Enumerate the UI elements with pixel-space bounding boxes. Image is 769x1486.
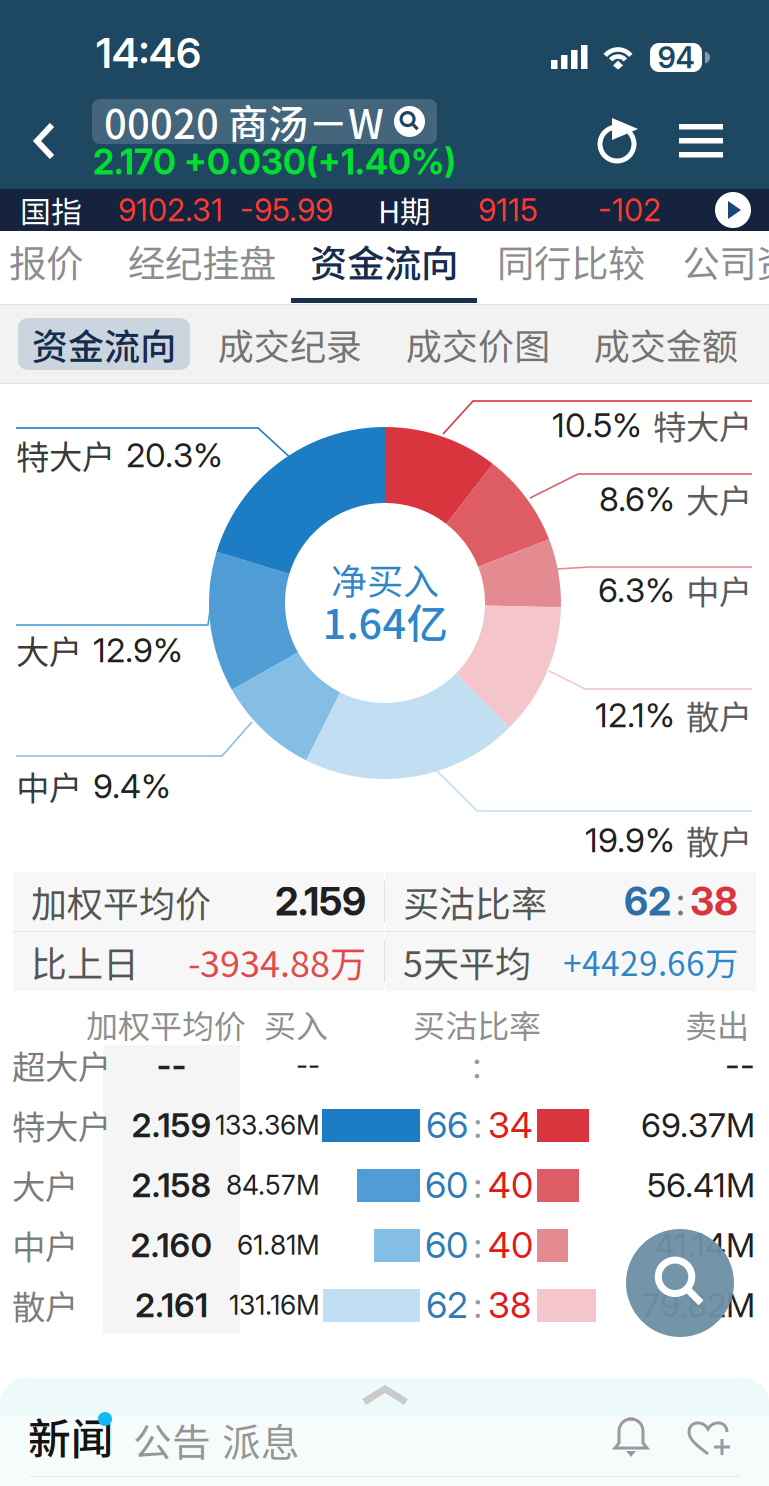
staticText: 60	[425, 1163, 468, 1207]
staticText: 净买入	[331, 553, 439, 605]
staticText: --	[156, 1045, 186, 1085]
staticText: 40	[488, 1223, 533, 1267]
staticText: 66	[426, 1103, 468, 1147]
staticText: 公告	[133, 1412, 211, 1468]
button[interactable]: 公司资	[663, 231, 769, 304]
staticText: --	[725, 1045, 755, 1085]
button[interactable]: Alerts	[600, 1406, 662, 1468]
staticText: 成交价图	[406, 318, 550, 370]
staticText: 2.161	[135, 1285, 208, 1325]
staticText: -3934.88万	[188, 935, 366, 987]
staticText: 买沽比率	[403, 875, 547, 927]
staticText: 中户	[12, 1221, 78, 1269]
staticText: 国指	[20, 188, 82, 232]
staticText: 84.57M	[226, 1169, 320, 1201]
staticText: 特大户	[16, 431, 115, 479]
staticText: 14:46	[96, 28, 201, 78]
staticText: :	[473, 1163, 482, 1207]
staticText: H期	[378, 188, 431, 232]
staticText: 40	[488, 1163, 533, 1207]
staticText: 2.158	[131, 1165, 211, 1205]
button[interactable]: 成交价图	[392, 318, 564, 370]
staticText: 资金流向	[310, 234, 458, 288]
staticText: 散户	[686, 691, 752, 739]
staticText: 2.159	[275, 878, 366, 925]
staticText: 61.81M	[237, 1229, 320, 1261]
staticText: 9.4%	[93, 766, 171, 806]
staticText: 94	[657, 40, 694, 75]
staticText: 卖出	[685, 1001, 749, 1047]
button[interactable]: Back	[8, 106, 82, 176]
button[interactable]: Add to watchlist	[676, 1406, 744, 1468]
staticText: 12.9%	[93, 630, 183, 670]
staticText: 20.3%	[126, 435, 223, 475]
staticText: 34	[488, 1103, 533, 1147]
staticText: 00020 商汤－W	[104, 92, 384, 150]
button[interactable]: Menu	[659, 101, 743, 181]
staticText: 中户	[16, 762, 82, 810]
staticText: 56.41M	[647, 1165, 755, 1205]
button[interactable]: 公告	[133, 1412, 243, 1468]
staticText: 2.160	[130, 1225, 212, 1265]
button[interactable]: Refresh	[577, 101, 661, 181]
staticText: 9115	[478, 191, 538, 228]
staticText: 买沽比率	[413, 1001, 541, 1047]
button[interactable]: 报价	[0, 231, 101, 304]
staticText: :	[473, 1223, 482, 1267]
staticText: 散户	[12, 1281, 78, 1329]
staticText: 散户	[686, 816, 752, 864]
button[interactable]: 经纪挂盘	[117, 231, 287, 304]
staticText: 79.82M	[642, 1285, 755, 1325]
staticText: 大户	[686, 475, 752, 523]
staticText: :	[472, 1042, 481, 1088]
staticText: 公司资	[682, 234, 769, 288]
staticText: -95.99	[240, 191, 333, 228]
staticText: 成交金额	[594, 318, 738, 370]
staticText: 派息	[222, 1412, 300, 1468]
staticText: 1.64亿	[322, 591, 447, 651]
staticText: 69.37M	[641, 1105, 755, 1145]
button[interactable]: 成交金额	[580, 318, 752, 370]
staticText: 经纪挂盘	[128, 234, 276, 288]
button[interactable]: 同行比较	[486, 231, 656, 304]
staticText: :	[473, 1283, 482, 1327]
staticText: 38	[488, 1283, 531, 1327]
staticText: 特大户	[12, 1101, 111, 1149]
staticText: --	[296, 1049, 320, 1081]
button[interactable]: 新闻	[28, 1410, 158, 1466]
staticText: +4429.66万	[563, 937, 738, 986]
staticText: 买入	[264, 1001, 328, 1047]
staticText: 2.170 +0.030(+1.40%)	[93, 141, 456, 183]
staticText: 62	[426, 1283, 468, 1327]
staticText: 131.16M	[229, 1289, 320, 1321]
staticText: 38	[690, 878, 738, 925]
button[interactable]: 资金流向	[18, 318, 190, 370]
staticText: 大户	[16, 626, 82, 674]
staticText: :	[473, 1103, 482, 1147]
staticText: 12.1%	[595, 695, 675, 735]
staticText: 同行比较	[497, 234, 645, 288]
staticText: 特大户	[653, 401, 752, 449]
staticText: 2.159	[131, 1105, 211, 1145]
staticText: 19.9%	[585, 820, 675, 860]
staticText: -102	[598, 191, 661, 228]
button[interactable]: Search	[626, 1229, 734, 1337]
staticText: 6.3%	[598, 570, 675, 610]
staticText: 133.36M	[215, 1109, 320, 1141]
staticText: 8.6%	[599, 479, 675, 519]
staticText: 60	[425, 1223, 468, 1267]
button[interactable]: 派息	[222, 1412, 332, 1468]
button[interactable]: 00020 商汤－W	[92, 99, 437, 144]
staticText: 报价	[9, 234, 83, 288]
staticText: 新闻	[28, 1405, 114, 1467]
staticText: 资金流向	[32, 318, 176, 370]
button[interactable]: 成交纪录	[204, 318, 376, 370]
staticText: 5天平均	[403, 935, 531, 987]
button[interactable]: 资金流向	[291, 231, 477, 304]
button[interactable]: Play	[715, 192, 751, 228]
staticText: 中户	[686, 566, 752, 614]
staticText: 9102.31	[118, 191, 223, 228]
staticText: 62	[624, 878, 671, 925]
staticText: 超大户	[12, 1041, 111, 1089]
staticText: 加权平均价	[86, 1001, 246, 1047]
